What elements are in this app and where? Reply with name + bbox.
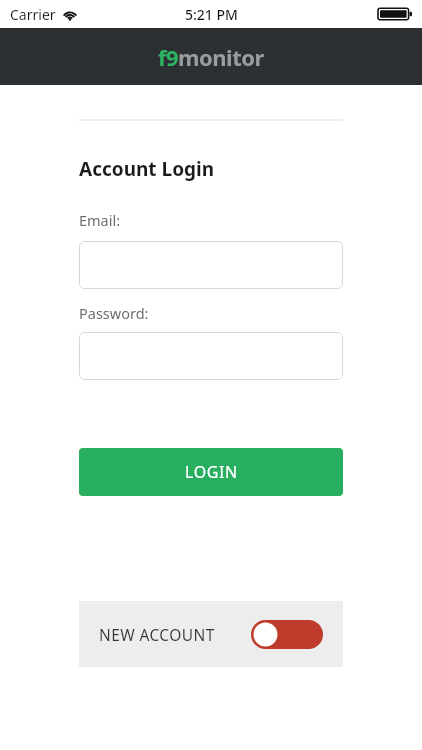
button[interactable]: Text input: [79, 332, 343, 380]
staticText: 5:21 PM: [185, 5, 238, 24]
staticText: Account Login: [79, 156, 215, 182]
button[interactable]: NEW ACCOUNT: [79, 601, 343, 667]
button[interactable]: LOGIN: [79, 448, 343, 496]
staticText: Email:: [79, 210, 121, 230]
staticText: f9monitor: [158, 42, 264, 72]
staticText: LOGIN: [185, 461, 238, 483]
button[interactable]: New account toggle: [251, 620, 323, 649]
staticText: Password:: [79, 303, 149, 323]
button[interactable]: Text input: [79, 241, 343, 289]
staticText: NEW ACCOUNT: [99, 624, 215, 645]
staticText: Carrier: [10, 5, 56, 24]
